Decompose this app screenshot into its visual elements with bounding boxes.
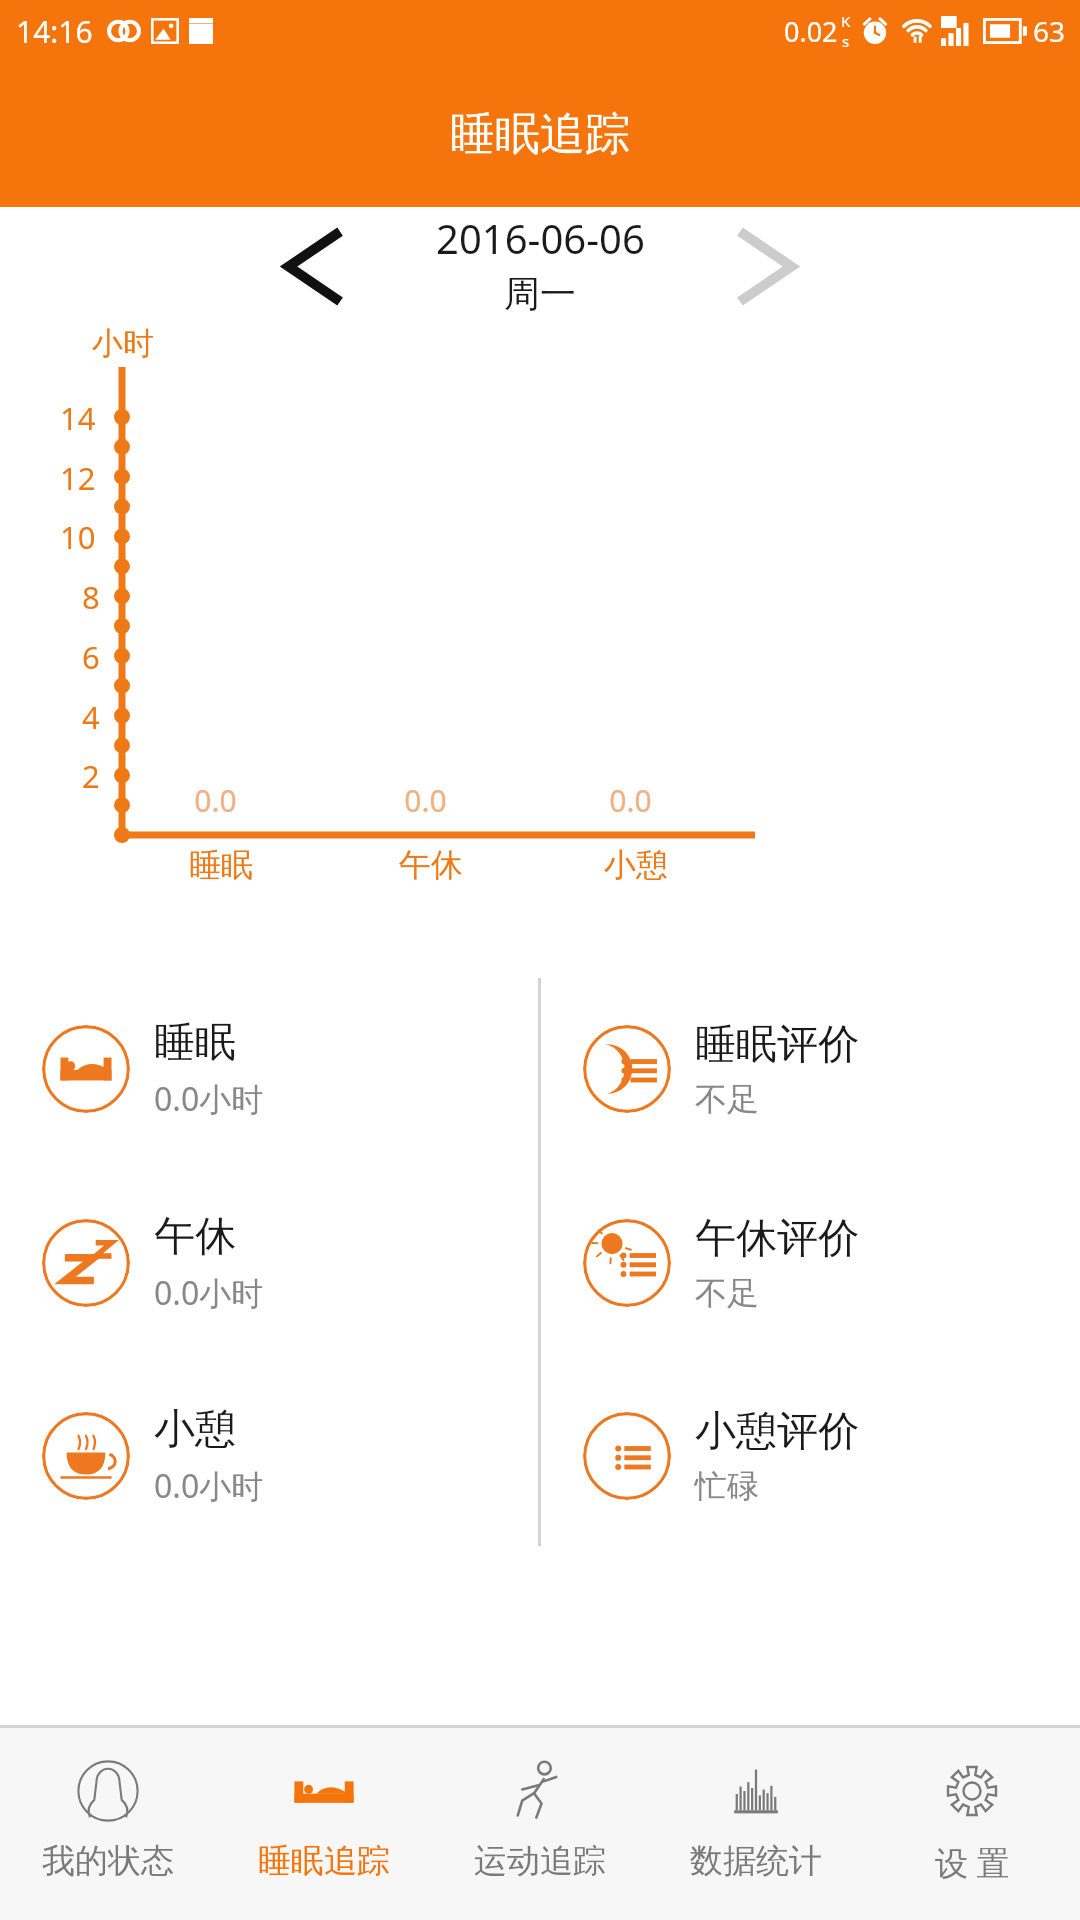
staticText: 0.0小时: [154, 1271, 264, 1315]
staticText: 午休评价: [695, 1213, 859, 1265]
button[interactable]: 我的状态: [0, 1728, 216, 1920]
button[interactable]: Next day: [732, 227, 798, 303]
button[interactable]: 睡眠评价: [541, 972, 1080, 1166]
staticText: 0.0小时: [154, 1464, 264, 1508]
staticText: 忙碌: [695, 1466, 759, 1506]
staticText: 小憩: [604, 845, 668, 885]
button[interactable]: 设 置: [864, 1728, 1080, 1920]
staticText: 睡眠追踪: [450, 106, 630, 163]
staticText: 0.0: [194, 780, 237, 821]
staticText: 14:16: [16, 11, 93, 52]
button[interactable]: 午休评价: [541, 1166, 1080, 1359]
staticText: 睡眠: [189, 845, 253, 885]
staticText: 我的状态: [42, 1840, 174, 1882]
staticText: 14: [60, 397, 96, 439]
staticText: 0.02: [784, 13, 838, 50]
staticText: 小时: [92, 324, 154, 363]
staticText: 0.0小时: [154, 1077, 264, 1121]
staticText: 小憩评价: [695, 1406, 859, 1458]
staticText: 设 置: [935, 1840, 1010, 1885]
staticText: 小憩: [154, 1404, 236, 1456]
staticText: 周一: [504, 271, 576, 316]
staticText: 10: [60, 516, 96, 558]
button[interactable]: 小憩评价: [541, 1359, 1080, 1552]
staticText: 0.0: [609, 780, 652, 821]
staticText: 数据统计: [690, 1840, 822, 1882]
button[interactable]: 运动追踪: [432, 1728, 648, 1920]
staticText: K: [841, 11, 851, 31]
staticText: 运动追踪: [474, 1840, 606, 1882]
staticText: 不足: [695, 1273, 759, 1313]
button[interactable]: 睡眠追踪: [216, 1728, 432, 1920]
staticText: 63: [1033, 12, 1066, 50]
staticText: 午休: [399, 845, 463, 885]
staticText: 睡眠: [154, 1017, 236, 1069]
staticText: 8: [82, 576, 100, 618]
staticText: 6: [82, 636, 100, 678]
staticText: 4: [82, 696, 100, 738]
staticText: 2: [82, 755, 100, 797]
button[interactable]: 小憩: [0, 1359, 538, 1552]
staticText: 午休: [154, 1211, 236, 1263]
staticText: s: [842, 31, 850, 51]
staticText: 睡眠评价: [695, 1019, 859, 1071]
button[interactable]: 午休: [0, 1166, 538, 1359]
staticText: 12: [60, 457, 96, 499]
button[interactable]: 睡眠: [0, 972, 538, 1166]
button[interactable]: 数据统计: [648, 1728, 864, 1920]
staticText: 2016-06-06: [436, 211, 645, 265]
staticText: 0.0: [404, 780, 447, 821]
button[interactable]: Previous day: [282, 227, 348, 303]
staticText: 不足: [695, 1079, 759, 1119]
staticText: 睡眠追踪: [258, 1840, 390, 1882]
